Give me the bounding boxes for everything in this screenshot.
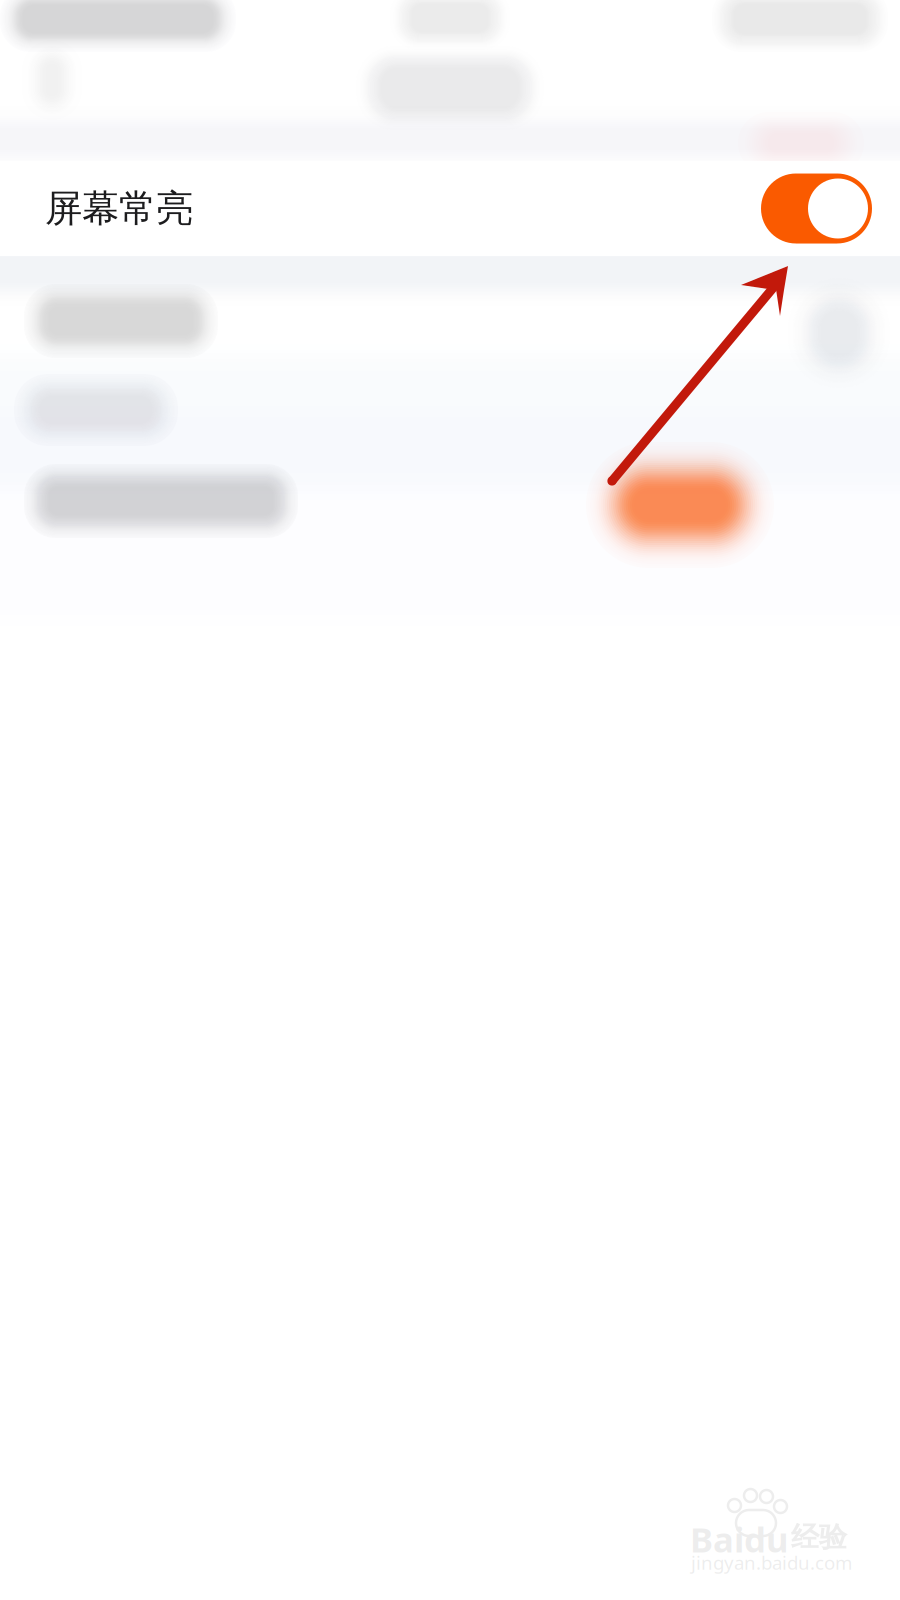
staticText: 屏幕常亮 <box>45 186 193 231</box>
button[interactable]: 屏幕常亮 <box>0 161 900 256</box>
staticText: Baidu <box>690 1516 789 1562</box>
staticText: jingyan.baidu.com <box>691 1550 852 1575</box>
staticText: 经验 <box>791 1520 847 1554</box>
